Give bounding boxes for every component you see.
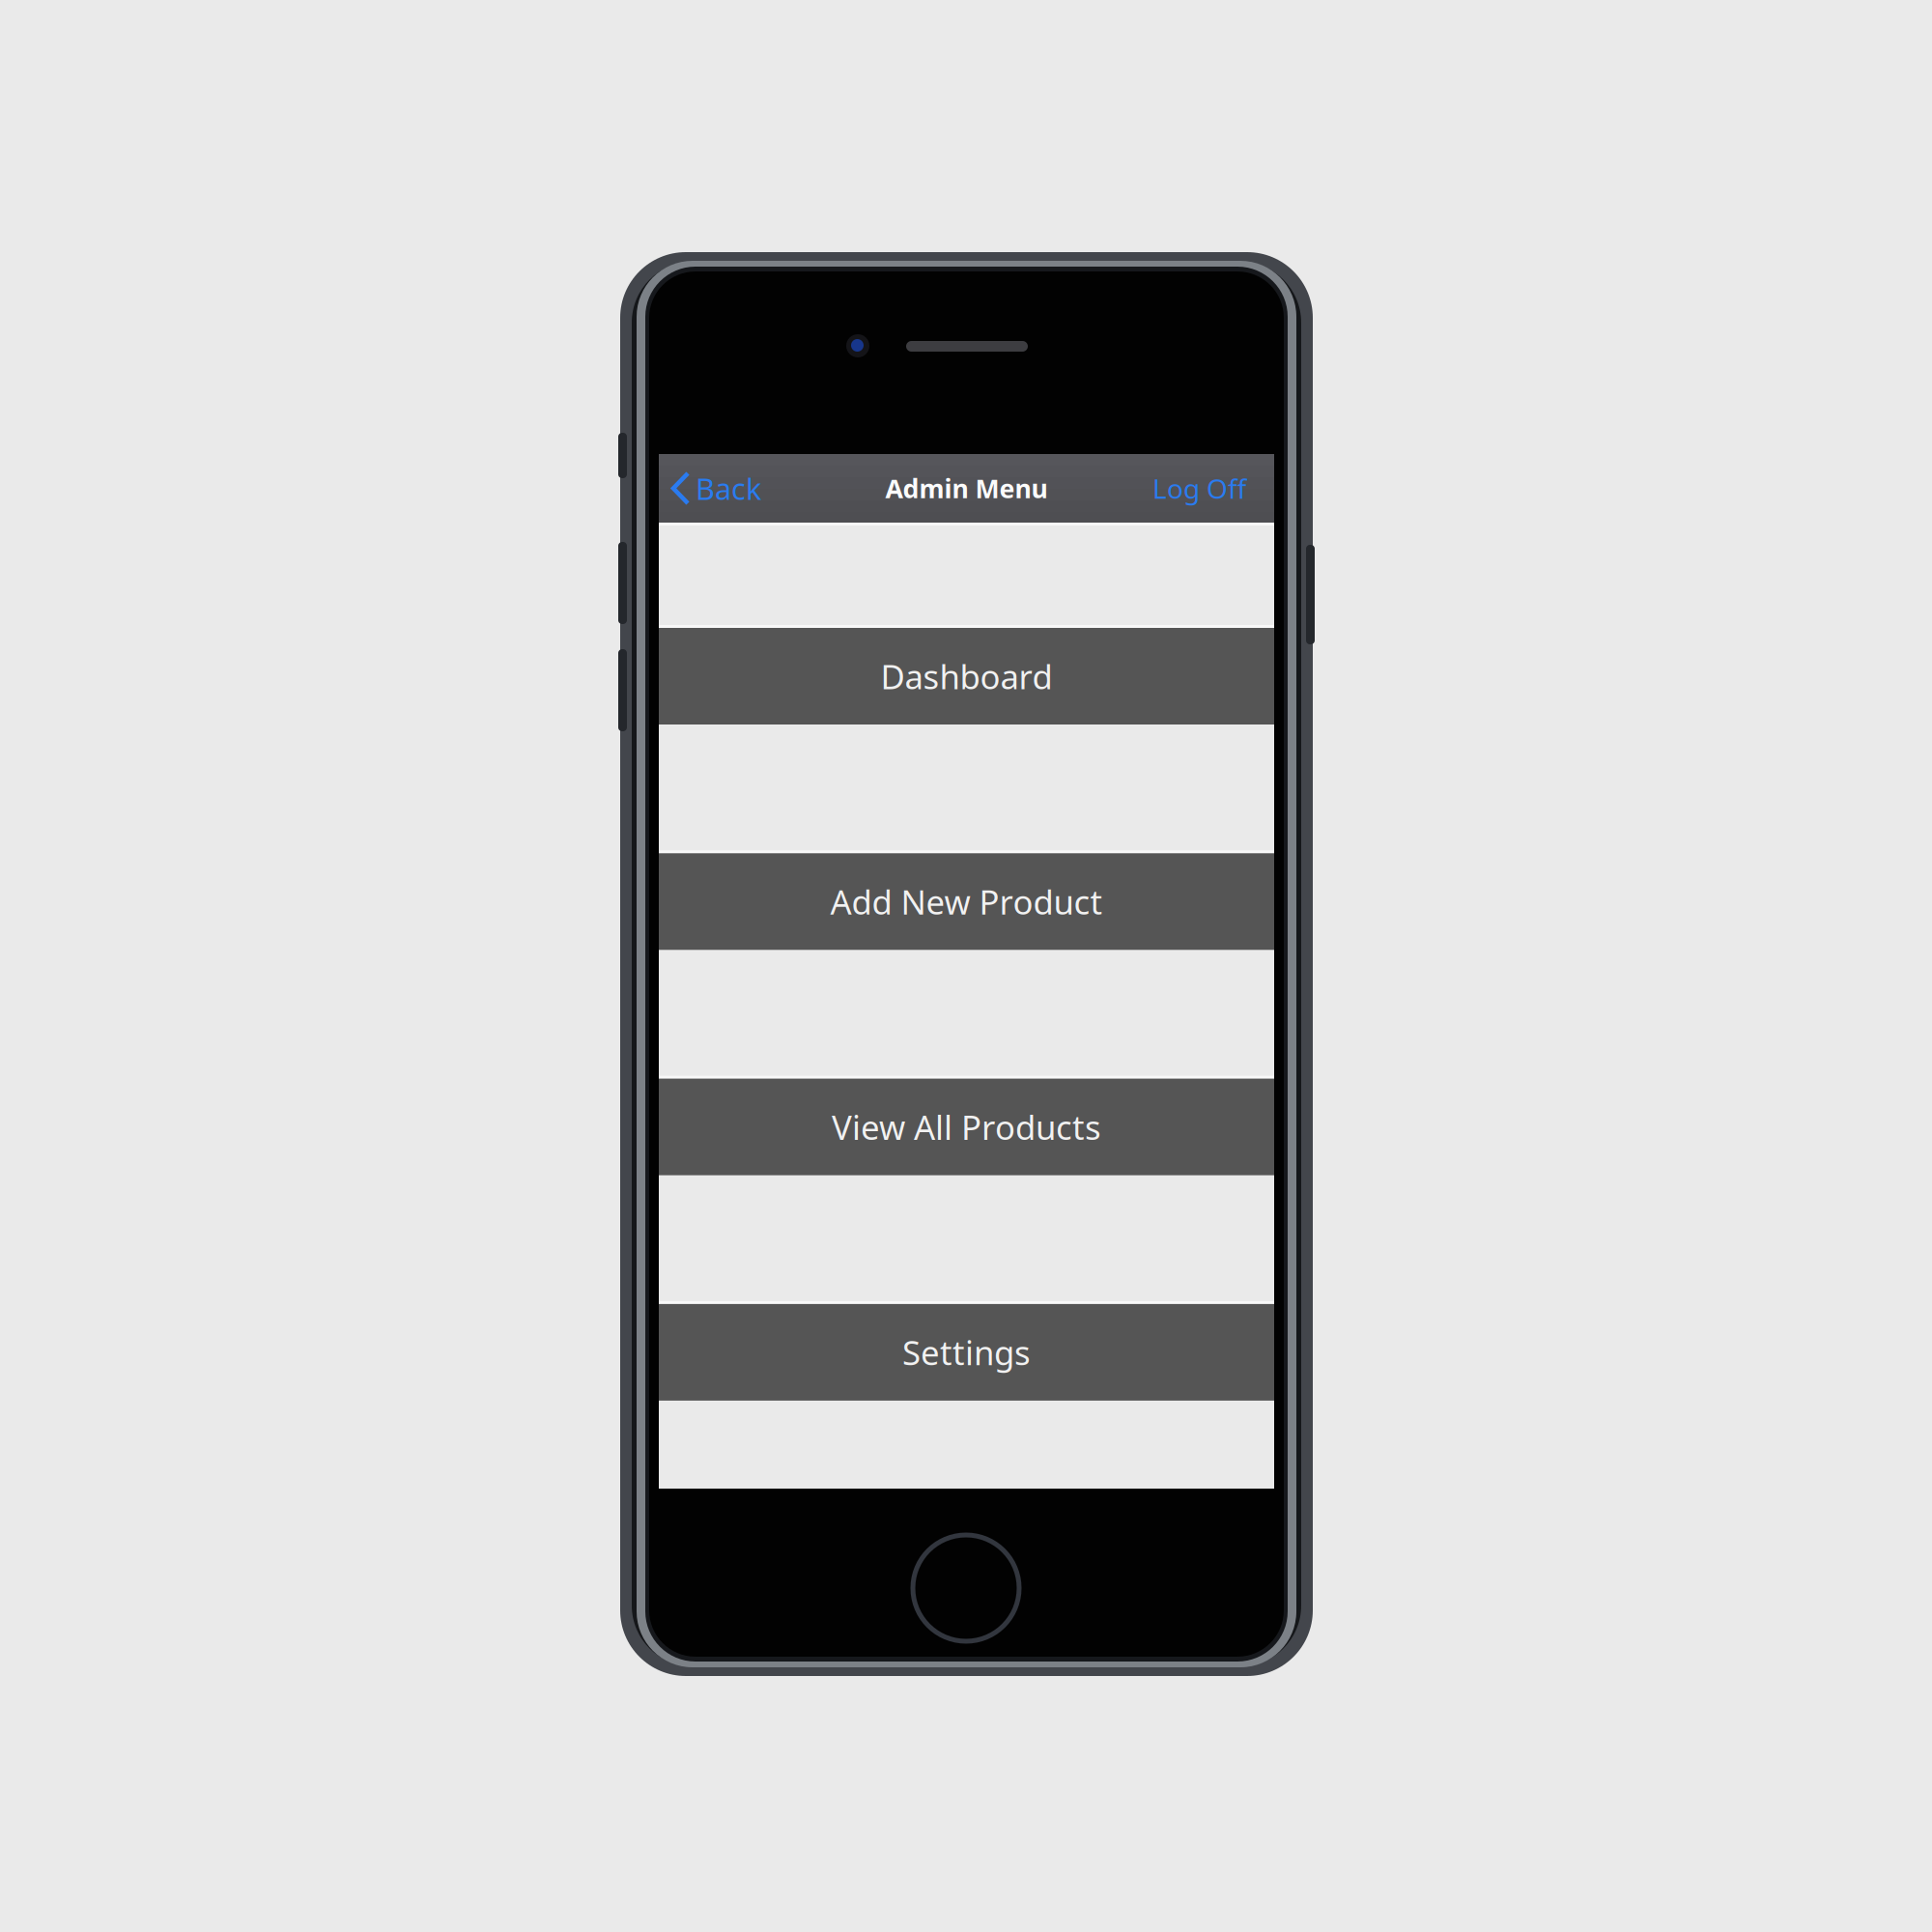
staticText: Settings — [902, 1330, 1031, 1375]
button[interactable]: Dashboard — [659, 625, 1274, 724]
staticText: Back — [696, 469, 761, 508]
staticText: Dashboard — [881, 654, 1052, 698]
staticText: Log Off — [1152, 470, 1246, 506]
staticText: View All Products — [832, 1105, 1101, 1149]
button[interactable]: View All Products — [659, 1076, 1274, 1175]
button[interactable]: Settings — [659, 1301, 1274, 1401]
staticText: Admin Menu — [885, 471, 1048, 505]
button[interactable]: Back — [659, 454, 761, 523]
button[interactable]: Add New Product — [659, 850, 1274, 950]
button[interactable]: Log Off — [1152, 454, 1274, 523]
staticText: Add New Product — [830, 879, 1103, 924]
